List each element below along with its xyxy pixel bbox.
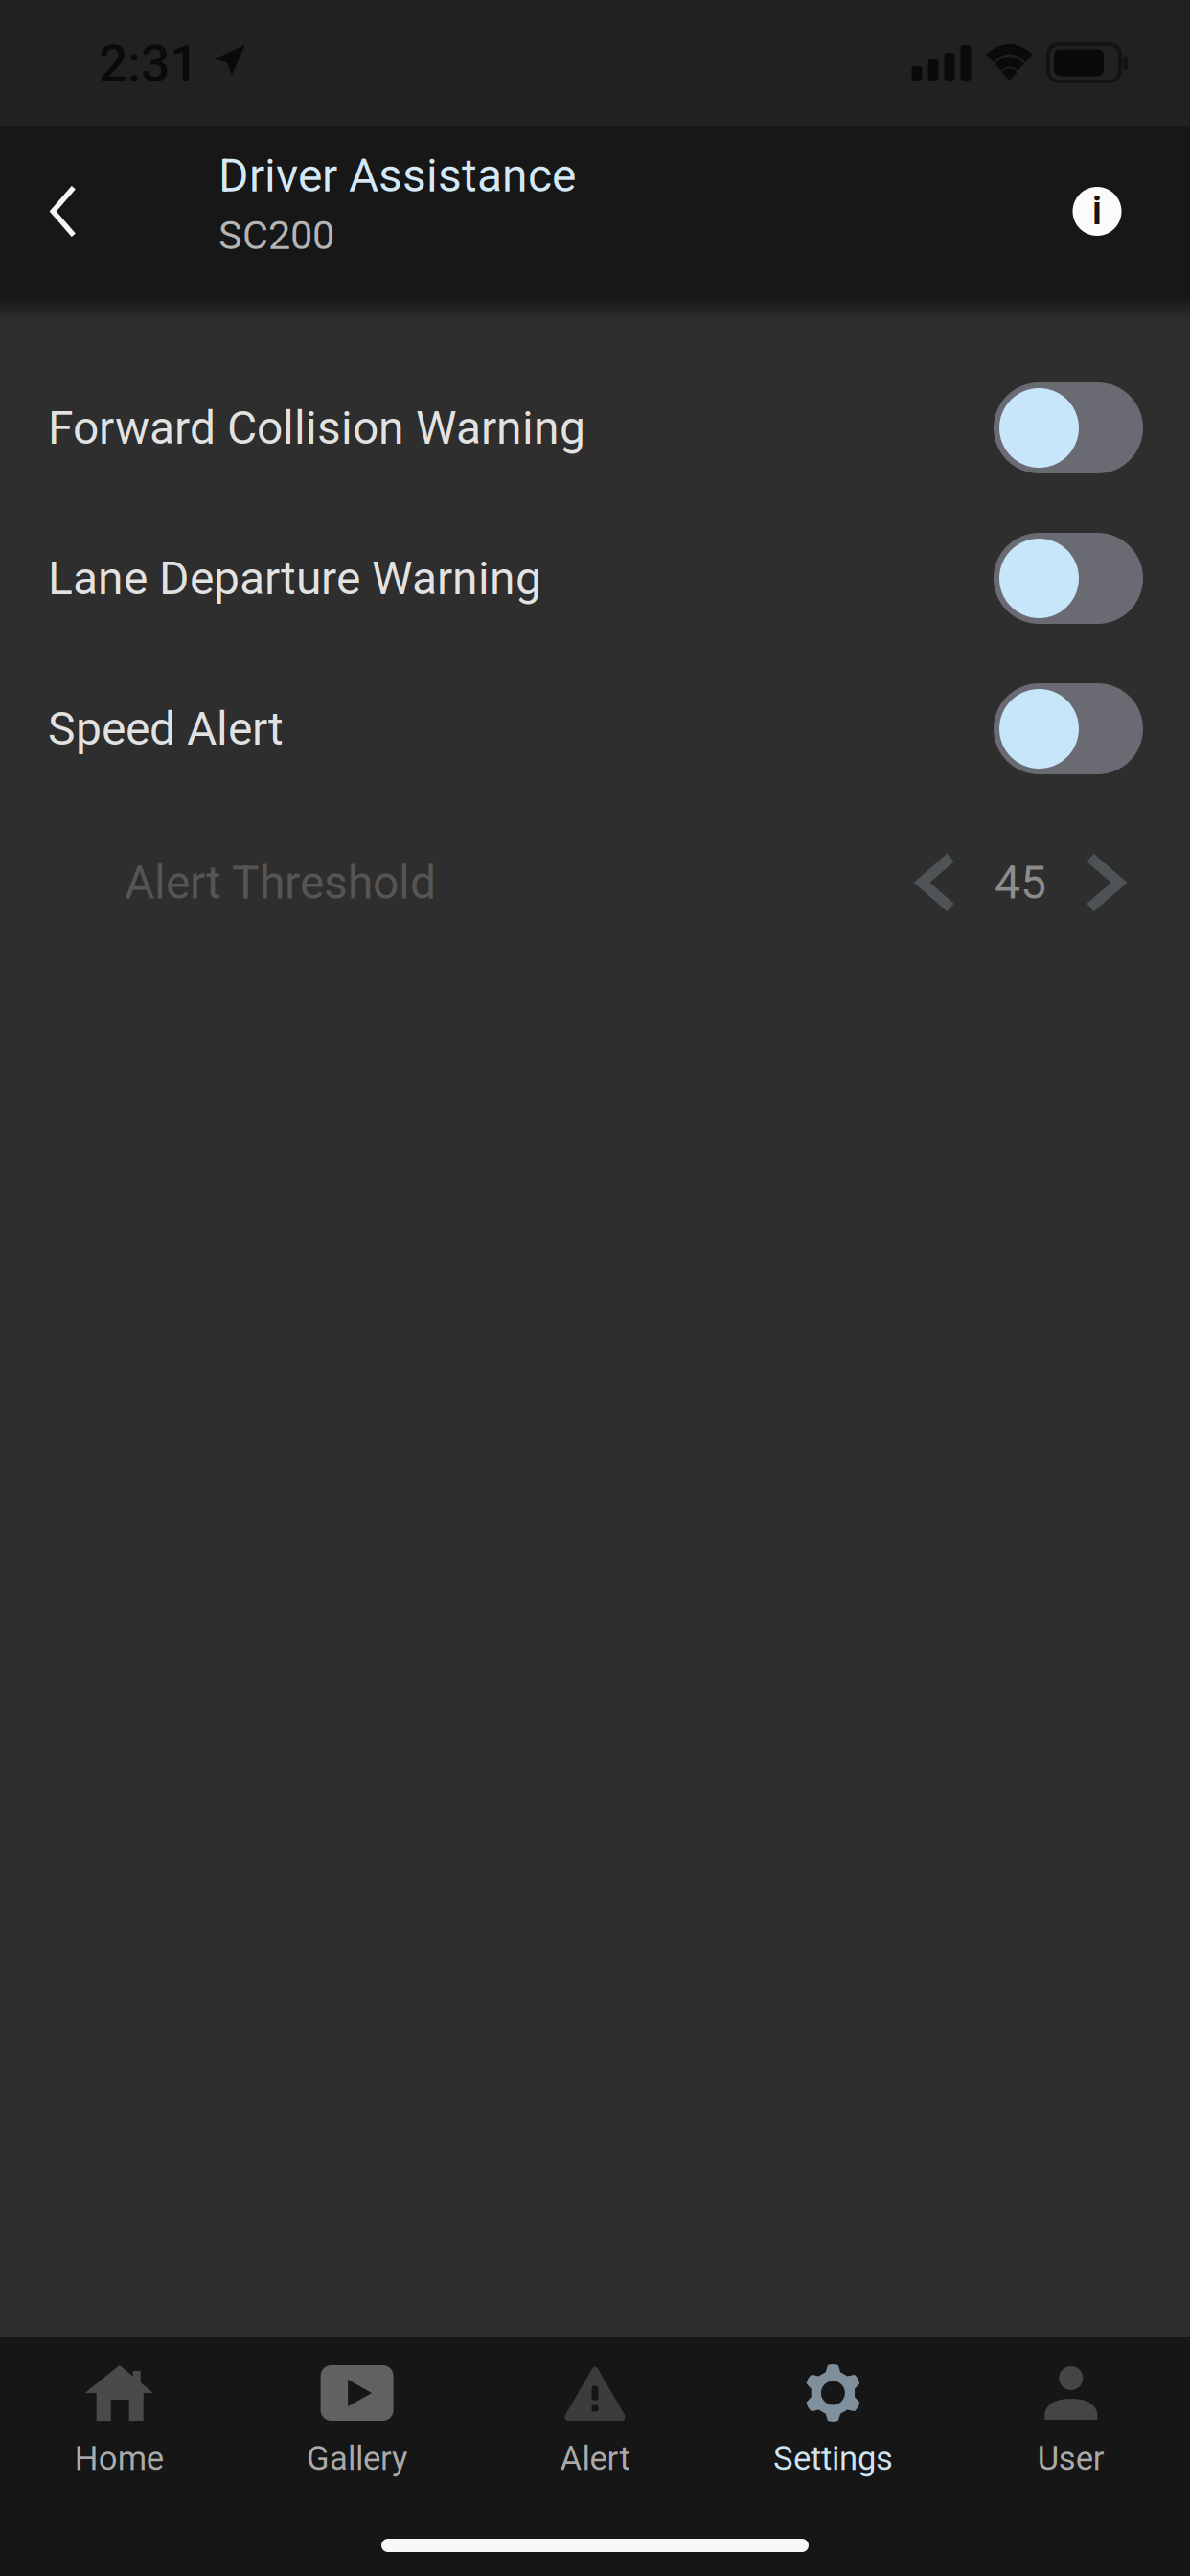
staticText: i: [1092, 186, 1102, 234]
button[interactable]: Information: [1004, 126, 1190, 297]
button[interactable]: User: [952, 2337, 1190, 2495]
staticText: 2:31: [99, 34, 198, 94]
staticText: Alert: [560, 2439, 630, 2478]
staticText: Forward Collision Warning: [48, 401, 585, 455]
button[interactable]: Increase alert threshold: [1065, 825, 1144, 940]
button[interactable]: Back: [0, 126, 126, 297]
staticText: Settings: [773, 2439, 893, 2478]
button[interactable]: Forward Collision Warning: [0, 353, 1190, 503]
staticText: 45: [995, 856, 1046, 910]
button[interactable]: Settings: [714, 2337, 952, 2495]
button[interactable]: Decrease alert threshold: [897, 825, 975, 940]
staticText: Lane Departure Warning: [48, 551, 541, 605]
staticText: Driver Assistance: [218, 149, 576, 203]
button[interactable]: Home: [0, 2337, 238, 2495]
button[interactable]: Speed Alert: [0, 654, 1190, 804]
staticText: User: [1037, 2439, 1105, 2478]
staticText: Alert Threshold: [125, 856, 436, 910]
button[interactable]: Alert: [476, 2337, 714, 2495]
staticText: Home: [74, 2439, 164, 2478]
staticText: Speed Alert: [48, 702, 284, 756]
staticText: Gallery: [307, 2439, 407, 2478]
button[interactable]: Gallery: [238, 2337, 476, 2495]
staticText: SC200: [218, 212, 334, 259]
button[interactable]: Lane Departure Warning: [0, 503, 1190, 654]
